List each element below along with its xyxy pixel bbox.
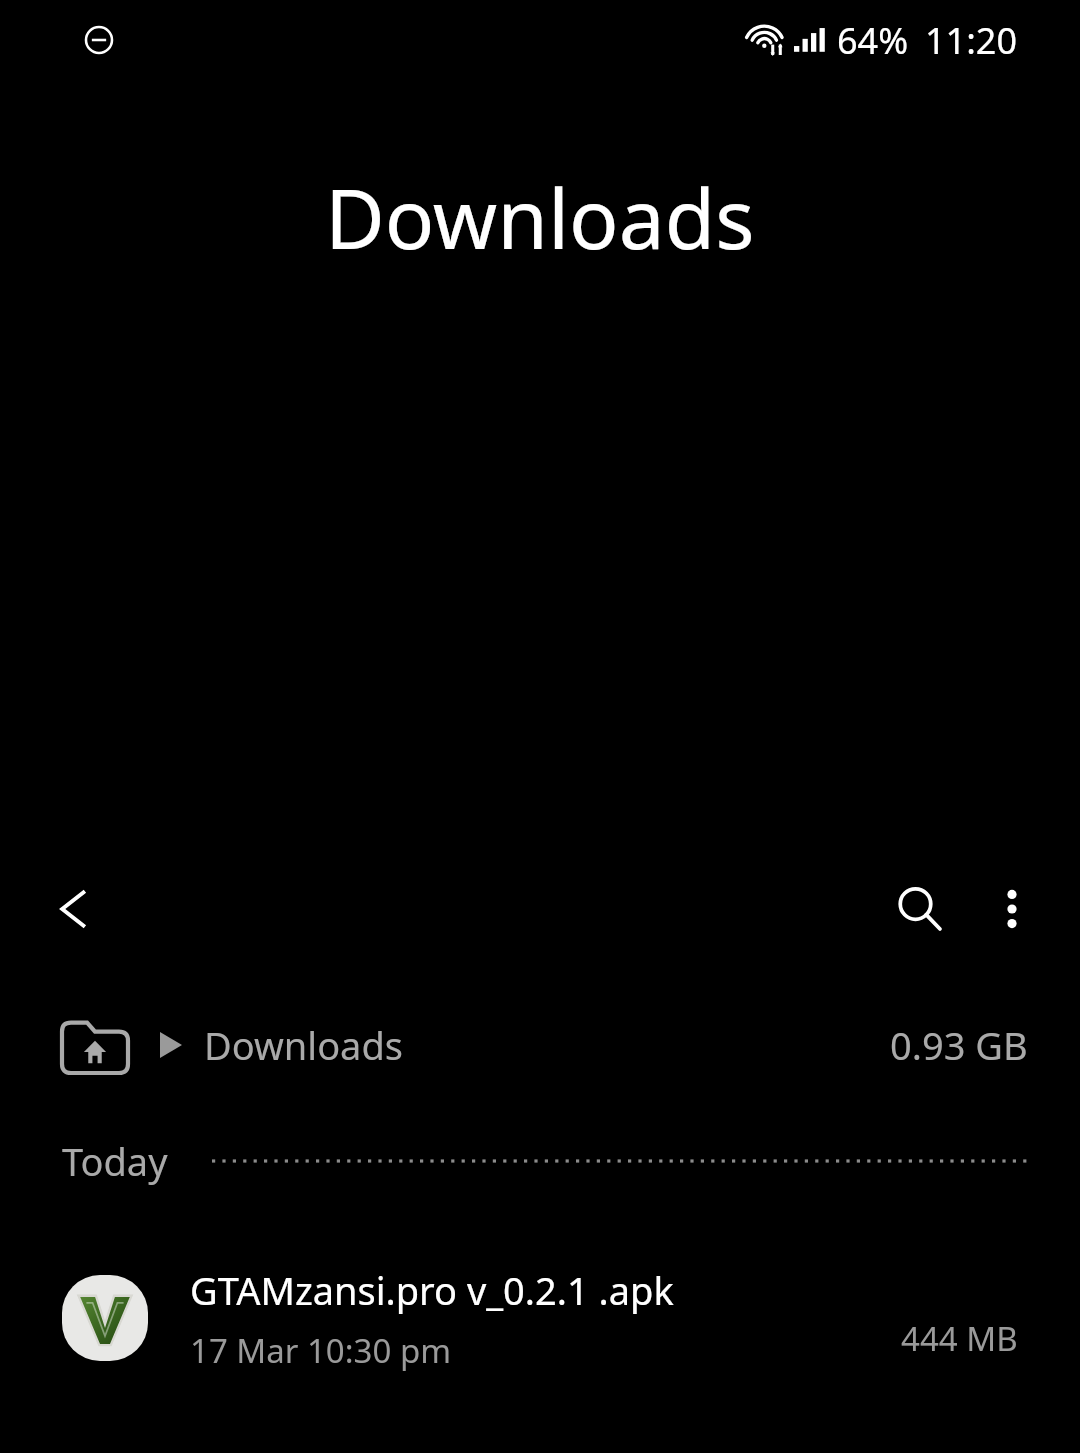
staticText: Downloads	[204, 1019, 404, 1071]
staticText: 0.93 GB	[890, 1019, 1028, 1071]
staticText: GTAMzansi.pro v_0.2.1 .apk	[190, 1264, 674, 1316]
button[interactable]: Downloads	[0, 1007, 1080, 1083]
button[interactable]: Search	[874, 863, 966, 955]
button[interactable]: More options	[966, 863, 1058, 955]
staticText: 11:20	[925, 16, 1018, 65]
staticText: 64%	[837, 16, 909, 65]
staticText: 444 MB	[901, 1316, 1018, 1361]
staticText: Today	[62, 1135, 168, 1187]
button[interactable]: Back	[34, 867, 118, 951]
staticText: 17 Mar 10:30 pm	[190, 1328, 452, 1373]
button[interactable]: GTAMzansi.pro v_0.2.1 .apk	[0, 1243, 1080, 1393]
staticText: Downloads	[325, 161, 755, 273]
